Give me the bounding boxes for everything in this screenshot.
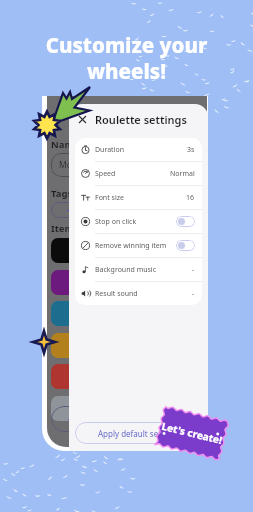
staticText: Mov — [59, 159, 77, 171]
button[interactable]: Background music — [75, 258, 202, 281]
button[interactable]: Duration — [75, 138, 202, 161]
staticText: Duration — [95, 145, 125, 155]
staticText: - — [192, 265, 195, 275]
staticText: Let's create! — [160, 419, 224, 447]
staticText: - — [192, 289, 195, 299]
staticText: Font size — [95, 193, 124, 203]
button[interactable]: Result sound — [75, 282, 202, 305]
staticText: Items — [51, 222, 79, 235]
staticText: Tags — [51, 187, 73, 200]
button[interactable]: Font size — [75, 186, 202, 209]
staticText: Customize your wheels! — [0, 31, 253, 85]
button[interactable]: Close — [76, 113, 89, 126]
button[interactable]: Apply default settings — [75, 422, 202, 444]
button[interactable]: Remove winning item — [75, 234, 202, 257]
button[interactable]: Speed — [75, 162, 202, 185]
staticText: Roulette settings — [95, 112, 187, 127]
staticText: 16 — [186, 193, 195, 203]
button[interactable]: Let's create! — [152, 393, 232, 473]
staticText: Remove winning item — [95, 241, 167, 251]
staticText: Speed — [95, 169, 116, 179]
staticText: 3s — [187, 145, 195, 155]
button[interactable]: Stop on click — [75, 210, 202, 233]
staticText: Normal — [170, 169, 195, 179]
staticText: Apply default settings — [98, 428, 180, 439]
staticText: Result sound — [95, 289, 138, 299]
staticText: Name — [51, 138, 80, 151]
staticText: Stop on click — [95, 217, 137, 227]
staticText: Background music — [95, 265, 157, 275]
